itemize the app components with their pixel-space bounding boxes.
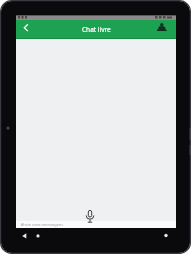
button[interactable]	[82, 205, 98, 223]
button[interactable]: Envie uma mensagem	[16, 221, 176, 228]
button[interactable]	[156, 20, 176, 39]
button[interactable]	[16, 20, 36, 39]
staticText: Chat livre	[82, 25, 111, 34]
staticText: Envie uma mensagem	[21, 222, 63, 227]
